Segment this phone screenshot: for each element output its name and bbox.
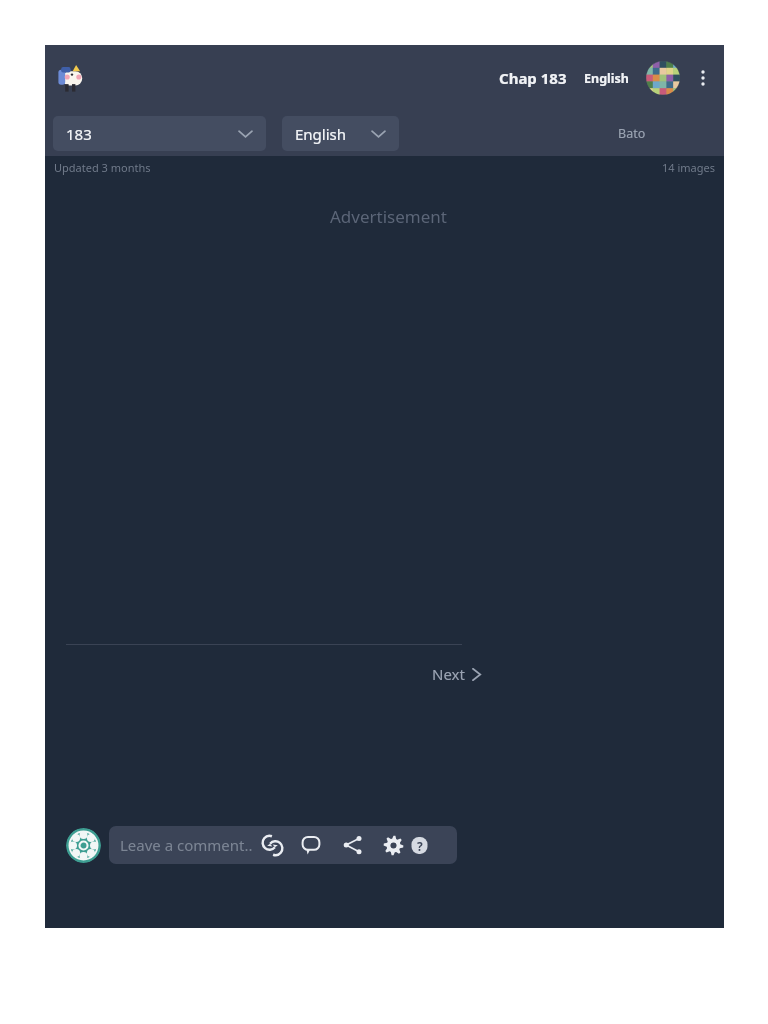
button[interactable]: Refresh [259,826,285,864]
button[interactable]: English [282,116,399,151]
button[interactable]: Home [52,58,92,98]
staticText: 14 images [662,160,715,175]
staticText: Updated 3 months [54,160,151,175]
button[interactable]: Bato [612,121,652,146]
button[interactable]: Next [428,660,485,688]
staticText: Advertisement [330,205,447,228]
button[interactable]: Comments [298,826,324,864]
button[interactable]: Settings [380,826,406,864]
button[interactable]: 183 [53,116,266,151]
staticText: Chap 183 [499,68,567,88]
button[interactable]: Account [646,61,680,95]
button[interactable]: Your profile [66,828,101,863]
button[interactable]: English [580,70,633,87]
button[interactable]: Share [340,826,366,864]
staticText: Next [432,664,465,684]
staticText: ? [417,838,423,854]
staticText: English [295,124,347,144]
button[interactable]: Leave a comment.. [109,826,259,864]
staticText: Leave a comment.. [120,835,253,855]
staticText: Bato [618,125,646,142]
staticText: English [584,70,629,87]
staticText: 183 [66,124,92,144]
button[interactable]: Help [406,826,432,864]
button[interactable]: More options [686,61,720,95]
button[interactable]: Chap 183 [495,68,571,88]
